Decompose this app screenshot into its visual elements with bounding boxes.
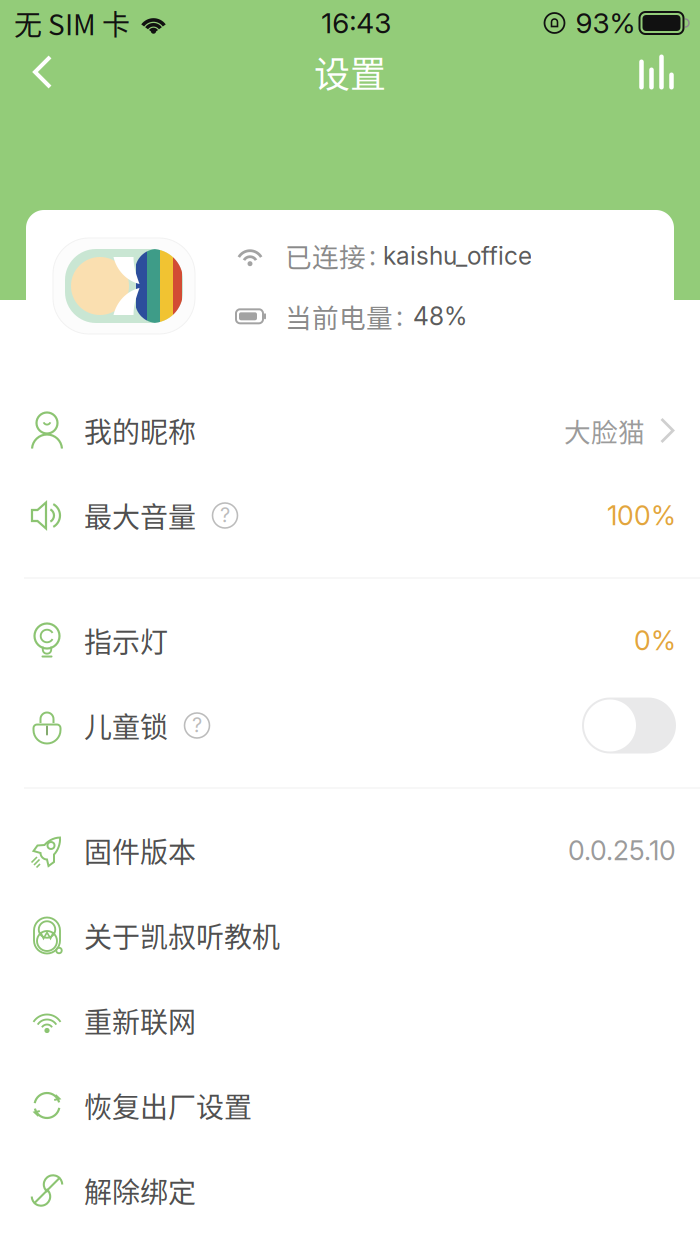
- staticText: 最大音量: [84, 495, 196, 536]
- staticText: 关于凯叔听教机: [84, 915, 280, 956]
- staticText: 解除绑定: [84, 1170, 196, 1211]
- button[interactable]: Usage statistics: [619, 44, 700, 99]
- staticText: 已连接: [285, 236, 366, 275]
- staticText: 大脸猫: [564, 411, 645, 450]
- button[interactable]: 关于凯叔听教机: [0, 893, 700, 978]
- staticText: 93%: [575, 6, 635, 40]
- button[interactable]: 最大音量: [0, 473, 700, 558]
- staticText: 重新联网: [84, 1000, 196, 1041]
- staticText: 无 SIM 卡: [14, 3, 130, 43]
- staticText: 0.0.25.10: [568, 834, 676, 867]
- button[interactable]: 解除绑定: [0, 1148, 700, 1233]
- staticText: kaishu_office: [383, 241, 532, 271]
- button[interactable]: 儿童锁: [0, 683, 700, 768]
- button[interactable]: 指示灯: [0, 598, 700, 683]
- staticText: ?: [220, 503, 230, 527]
- staticText: :: [396, 300, 403, 332]
- staticText: 当前电量: [285, 297, 393, 336]
- staticText: 恢复出厂设置: [84, 1085, 252, 1126]
- button[interactable]: 重新联网: [0, 978, 700, 1063]
- button[interactable]: 我的昵称: [0, 388, 700, 473]
- staticText: :: [369, 240, 376, 272]
- button[interactable]: Back: [0, 45, 74, 99]
- staticText: 0%: [634, 624, 676, 657]
- staticText: ?: [192, 713, 202, 737]
- staticText: 100%: [607, 499, 676, 532]
- staticText: 设置: [314, 46, 386, 98]
- staticText: 我的昵称: [84, 410, 196, 451]
- button[interactable]: 固件版本: [0, 808, 700, 893]
- staticText: 48%: [413, 301, 467, 331]
- button[interactable]: 恢复出厂设置: [0, 1063, 700, 1148]
- staticText: 儿童锁: [84, 705, 168, 746]
- staticText: 指示灯: [84, 620, 168, 661]
- staticText: 固件版本: [84, 830, 196, 871]
- staticText: 16:43: [321, 6, 391, 40]
